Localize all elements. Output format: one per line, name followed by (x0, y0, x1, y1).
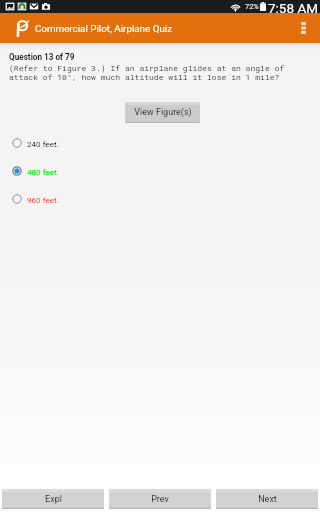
button[interactable]: 960 feet. (0, 185, 320, 213)
staticText: 240 feet. (27, 139, 59, 148)
button[interactable]: More options (287, 13, 320, 43)
button[interactable]: View Figure(s) (125, 102, 200, 123)
staticText: 7:58 AM (268, 0, 318, 13)
staticText: Prev (151, 494, 169, 505)
staticText: 480 feet. (27, 167, 59, 176)
staticText: Question 13 of 79 (9, 52, 75, 62)
staticText: Commercial Pilot, Airplane Quiz (35, 23, 173, 34)
button[interactable]: 240 feet. (0, 129, 320, 157)
button[interactable]: Expl (2, 489, 104, 509)
staticText: 960 feet. (27, 195, 59, 204)
button[interactable]: Prev (109, 489, 211, 509)
button[interactable]: Next (216, 489, 318, 509)
staticText: 72% (245, 2, 259, 11)
button[interactable]: 480 feet. (0, 157, 320, 185)
staticText: (Refer to Figure 3.) If an airplane glid… (9, 63, 285, 83)
staticText: Next (258, 494, 277, 505)
staticText: View Figure(s) (134, 107, 192, 118)
staticText: Expl (45, 494, 62, 505)
